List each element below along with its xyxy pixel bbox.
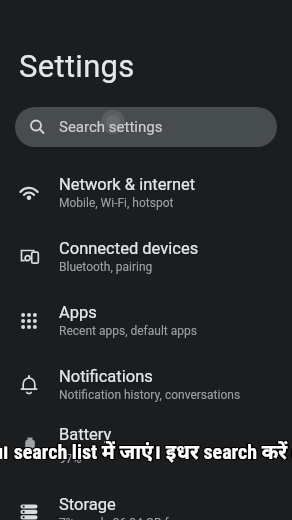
button[interactable]: Apps	[0, 289, 292, 353]
staticText: Notifications	[59, 367, 153, 386]
staticText: 97%	[59, 452, 82, 466]
staticText: Battery	[59, 425, 112, 444]
button[interactable]: Search settings	[15, 107, 277, 147]
button[interactable]: Battery	[0, 417, 292, 481]
staticText: Bluetooth, pairing	[59, 260, 153, 274]
button[interactable]: Notifications	[0, 353, 292, 417]
staticText: Network & internet	[59, 175, 196, 194]
staticText: Mobile, Wi-Fi, hotspot	[59, 196, 174, 210]
button[interactable]: Network & internet	[0, 161, 292, 225]
staticText: Settings	[19, 48, 135, 84]
staticText: 7% used - 26.04 GB free	[59, 516, 186, 520]
button[interactable]: Storage	[0, 481, 292, 520]
staticText: Search settings	[59, 118, 163, 136]
staticText: Connected devices	[59, 239, 199, 258]
staticText: Apps	[59, 303, 97, 322]
staticText: Notification history, conversations	[59, 388, 241, 402]
button[interactable]: Connected devices	[0, 225, 292, 289]
staticText: Recent apps, default apps	[59, 324, 197, 338]
staticText: Storage	[59, 495, 116, 514]
